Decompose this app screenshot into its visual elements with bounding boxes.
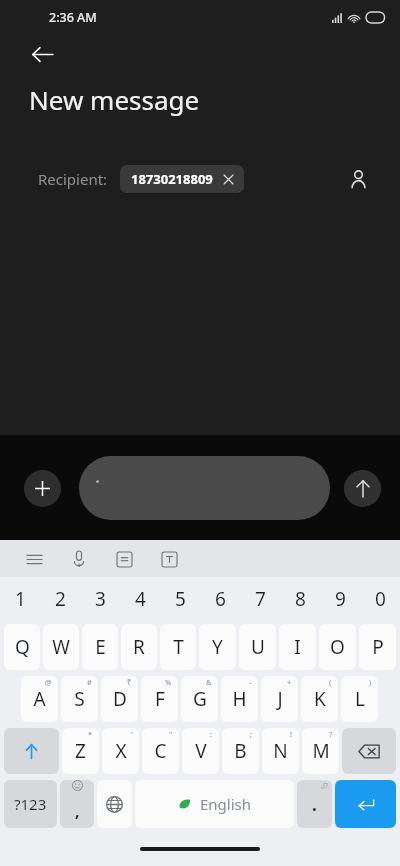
staticText: ,!? — [321, 781, 328, 791]
button[interactable]: C — [142, 728, 179, 774]
staticText: ! — [290, 729, 293, 739]
button[interactable]: Q — [4, 624, 40, 670]
staticText: 3 — [95, 586, 106, 612]
button[interactable]: R — [121, 624, 157, 670]
button[interactable]: 1 — [0, 577, 40, 621]
button[interactable]: Back — [22, 34, 62, 74]
staticText: L — [355, 686, 365, 712]
button[interactable]: 9 — [320, 577, 360, 621]
staticText: J — [277, 686, 283, 712]
staticText: W — [52, 634, 70, 660]
staticText: ( — [329, 677, 332, 687]
button[interactable]: J — [261, 676, 298, 722]
button[interactable]: 7 — [240, 577, 280, 621]
button[interactable]: 6 — [200, 577, 240, 621]
staticText: - — [249, 677, 252, 687]
button[interactable]: Clipboard — [109, 544, 139, 574]
button[interactable]: O — [319, 624, 356, 670]
button[interactable]: English — [135, 780, 294, 828]
button[interactable]: Period — [297, 780, 332, 828]
staticText: * — [88, 729, 93, 739]
staticText: D — [113, 686, 127, 712]
staticText: ; — [250, 729, 253, 739]
staticText: : — [210, 729, 213, 739]
staticText: Z — [75, 738, 86, 764]
staticText: P — [372, 634, 384, 660]
staticText: N — [273, 738, 288, 764]
button[interactable]: Emoji and comma — [60, 780, 94, 828]
staticText: Y — [212, 634, 223, 660]
staticText: # — [87, 677, 92, 687]
button[interactable]: S — [61, 676, 98, 722]
button[interactable]: Send — [344, 470, 381, 507]
staticText: G — [193, 686, 207, 712]
staticText: @ — [45, 677, 52, 687]
staticText: 6 — [215, 586, 226, 612]
button[interactable]: X — [102, 728, 139, 774]
staticText: ? — [329, 729, 333, 739]
button[interactable]: V — [182, 728, 219, 774]
button[interactable]: A — [21, 676, 58, 722]
button[interactable]: Enter — [335, 780, 396, 828]
button[interactable]: 2 — [40, 577, 80, 621]
button[interactable]: Contacts — [340, 161, 376, 197]
staticText: O — [330, 634, 345, 660]
staticText: . — [312, 793, 317, 816]
button[interactable] — [79, 456, 330, 520]
staticText: ' — [131, 729, 133, 739]
staticText: K — [314, 686, 326, 712]
staticText: ₹ — [127, 677, 132, 687]
button[interactable]: H — [221, 676, 258, 722]
button[interactable]: E — [82, 624, 118, 670]
button[interactable]: T — [160, 624, 196, 670]
button[interactable]: U — [239, 624, 276, 670]
staticText: 2 — [55, 586, 66, 612]
staticText: 5 — [175, 586, 186, 612]
button[interactable]: Attach — [24, 470, 61, 507]
button[interactable]: M — [302, 728, 339, 774]
button[interactable]: D — [101, 676, 138, 722]
button[interactable]: Z — [62, 728, 99, 774]
button[interactable]: L — [341, 676, 378, 722]
staticText: 4 — [135, 586, 146, 612]
button[interactable]: Shift — [4, 728, 59, 774]
button[interactable]: G — [181, 676, 218, 722]
staticText: R — [133, 634, 145, 660]
staticText: " — [169, 729, 173, 739]
staticText: 1 — [15, 586, 26, 612]
button[interactable]: ?123 — [4, 780, 57, 828]
button[interactable]: K — [301, 676, 338, 722]
button[interactable]: 4 — [120, 577, 160, 621]
button[interactable]: 5 — [160, 577, 200, 621]
button[interactable]: W — [43, 624, 79, 670]
button[interactable]: Text editing — [154, 544, 184, 574]
staticText: S — [74, 686, 85, 712]
staticText: 18730218809 — [131, 170, 213, 188]
button[interactable]: Change language — [97, 780, 132, 828]
staticText: C — [154, 738, 167, 764]
staticText: 7 — [255, 586, 266, 612]
button[interactable]: F — [141, 676, 178, 722]
button[interactable]: P — [359, 624, 396, 670]
staticText: % — [165, 677, 172, 687]
button[interactable]: Backspace — [342, 728, 396, 774]
button[interactable]: Keyboard menu — [19, 544, 49, 574]
staticText: 0 — [375, 586, 386, 612]
staticText: + — [287, 677, 292, 687]
button[interactable]: 18730218809 — [120, 165, 244, 193]
staticText: I — [294, 634, 301, 660]
button[interactable]: Voice input — [64, 544, 94, 574]
staticText: 8 — [295, 586, 306, 612]
staticText: T — [173, 634, 184, 660]
button[interactable]: N — [262, 728, 299, 774]
staticText: & — [206, 677, 212, 687]
button[interactable]: Y — [199, 624, 236, 670]
button[interactable]: B — [222, 728, 259, 774]
button[interactable]: 3 — [80, 577, 120, 621]
button[interactable]: 0 — [360, 577, 400, 621]
button[interactable]: I — [279, 624, 316, 670]
button[interactable]: 8 — [280, 577, 320, 621]
staticText: V — [195, 738, 207, 764]
staticText: X — [115, 738, 127, 764]
staticText: , — [75, 800, 80, 822]
